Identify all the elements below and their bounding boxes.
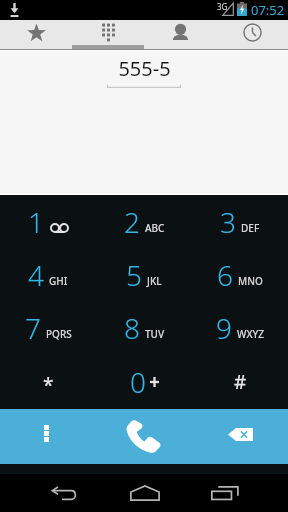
staticText: 07:52: [251, 1, 285, 19]
staticText: 7: [25, 309, 41, 347]
button[interactable]: Dialpad: [72, 20, 144, 45]
button[interactable]: 9: [192, 301, 288, 355]
button[interactable]: 2: [96, 195, 192, 248]
button[interactable]: 1: [0, 195, 96, 248]
staticText: 4: [28, 256, 44, 294]
staticText: 5: [126, 256, 142, 294]
staticText: #: [234, 369, 247, 395]
staticText: WXYZ: [237, 327, 265, 341]
button[interactable]: Home: [104, 474, 185, 512]
staticText: 3: [220, 203, 236, 241]
button[interactable]: 8: [96, 301, 192, 355]
button[interactable]: Back: [24, 474, 104, 512]
staticText: DEF: [241, 221, 260, 235]
button[interactable]: 3: [192, 195, 288, 248]
staticText: 8: [124, 309, 140, 347]
button[interactable]: 5: [96, 248, 192, 301]
button[interactable]: 7: [0, 301, 96, 355]
button[interactable]: 4: [0, 248, 96, 301]
staticText: TUV: [145, 327, 165, 341]
staticText: *: [43, 372, 54, 398]
staticText: MNO: [238, 274, 263, 288]
button[interactable]: Favorites: [0, 20, 72, 45]
button[interactable]: 0: [96, 355, 192, 409]
staticText: 1: [28, 203, 44, 241]
staticText: 9: [216, 309, 232, 347]
button[interactable]: 6: [192, 248, 288, 301]
staticText: 3G: [217, 1, 228, 12]
staticText: 555-5: [118, 55, 171, 82]
button[interactable]: Call: [96, 409, 192, 464]
staticText: PQRS: [46, 327, 72, 341]
button[interactable]: *: [0, 355, 96, 409]
staticText: GHI: [49, 274, 68, 288]
staticText: JKL: [147, 274, 162, 288]
staticText: 2: [124, 203, 140, 241]
button[interactable]: Contacts: [144, 20, 216, 45]
button[interactable]: #: [192, 355, 288, 409]
staticText: 6: [217, 256, 233, 294]
staticText: 0: [130, 363, 146, 401]
button[interactable]: More options: [0, 409, 96, 464]
staticText: ABC: [145, 221, 165, 235]
button[interactable]: Recent apps: [185, 474, 265, 512]
button[interactable]: Recents: [216, 20, 288, 45]
button[interactable]: Backspace: [192, 409, 288, 464]
